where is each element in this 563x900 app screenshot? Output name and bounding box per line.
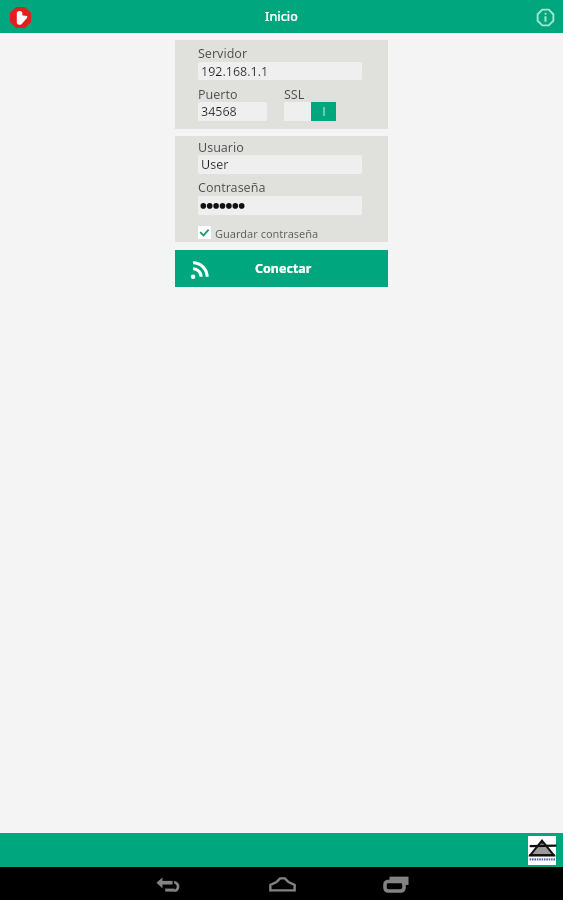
button[interactable]	[198, 196, 362, 215]
staticText: Guardar contraseña	[215, 226, 319, 239]
staticText: Servidor	[198, 45, 248, 59]
button[interactable]: Information	[533, 5, 557, 29]
button[interactable]: App logo	[528, 836, 556, 865]
staticText: Conectar	[255, 260, 312, 277]
button[interactable]: Conectar	[175, 250, 388, 287]
staticText: Puerto	[198, 86, 238, 99]
staticText: 34568	[201, 103, 237, 120]
staticText: SSL	[284, 86, 305, 99]
button[interactable]: Home	[258, 867, 306, 900]
button[interactable]: SSL enabled	[284, 102, 336, 121]
staticText: Contraseña	[198, 179, 266, 193]
button[interactable]: Guardar contraseña	[198, 226, 319, 239]
staticText: User	[201, 156, 229, 173]
button[interactable]: Recent apps	[372, 867, 420, 900]
button[interactable]: Stop	[7, 4, 33, 30]
button[interactable]: 192.168.1.1	[198, 62, 362, 80]
button[interactable]: User	[198, 155, 362, 174]
staticText: Inicio	[265, 8, 298, 25]
staticText: 192.168.1.1	[201, 63, 269, 80]
staticText: Usuario	[198, 139, 244, 152]
button[interactable]: Back	[143, 867, 191, 900]
button[interactable]: 34568	[198, 102, 267, 121]
